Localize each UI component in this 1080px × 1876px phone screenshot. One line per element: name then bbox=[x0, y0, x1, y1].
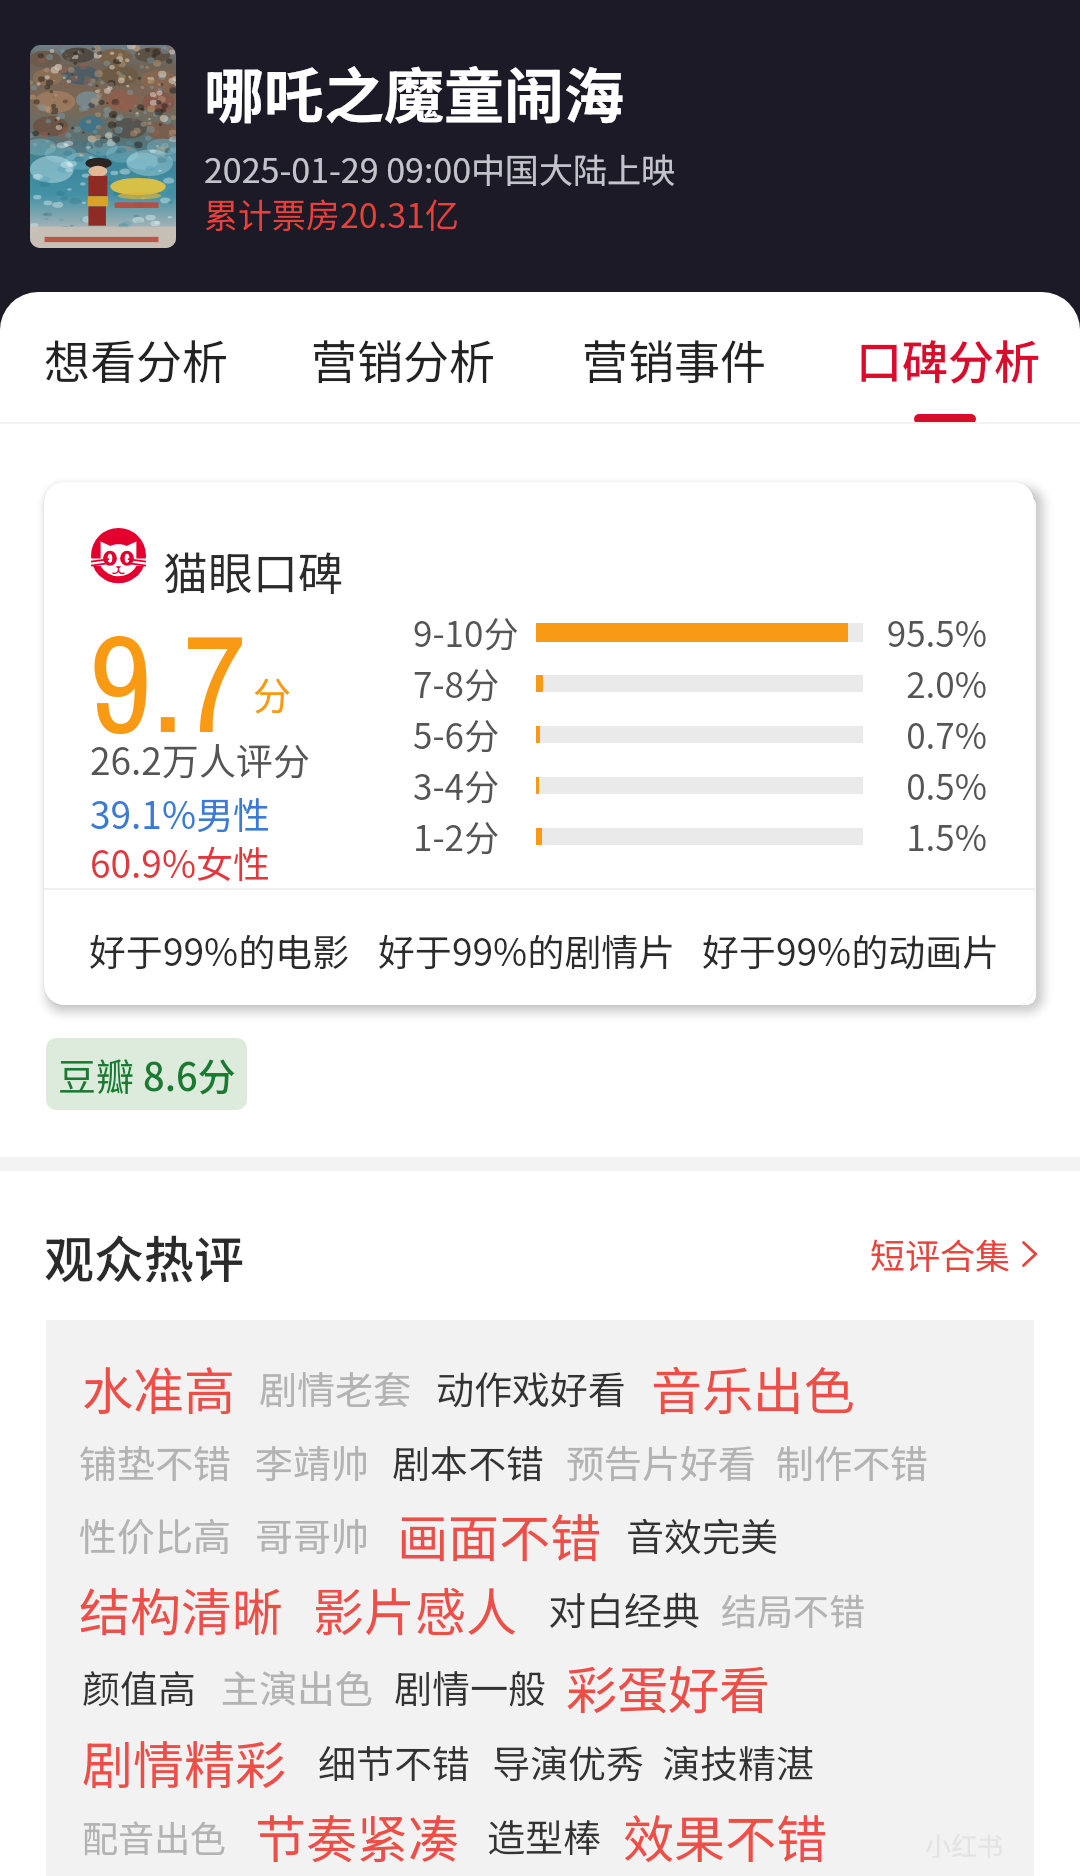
staticText: 0.7% bbox=[837, 708, 987, 759]
staticText: 营销分析 bbox=[311, 326, 495, 393]
button[interactable]: 猫眼口碑 9.7分 bbox=[44, 482, 1034, 1005]
staticText: 39.1%男性 bbox=[90, 786, 270, 840]
button[interactable]: 预告片好看 bbox=[566, 1434, 757, 1489]
staticText: 演技精湛 bbox=[662, 1734, 815, 1789]
staticText: 音效完美 bbox=[626, 1507, 779, 1562]
staticText: 结构清晰 bbox=[79, 1572, 284, 1646]
button[interactable]: 哥哥帅 bbox=[255, 1507, 370, 1562]
button[interactable]: 豆瓣 bbox=[46, 1038, 247, 1110]
staticText: 0.5% bbox=[837, 759, 987, 810]
staticText: 7-8分 bbox=[413, 657, 499, 708]
staticText: 哥哥帅 bbox=[255, 1507, 370, 1562]
staticText: 累计票房20.31亿 bbox=[204, 189, 459, 238]
button[interactable]: 剧情老套 bbox=[259, 1360, 412, 1415]
staticText: 剧本不错 bbox=[392, 1434, 545, 1489]
staticText: 效果不错 bbox=[623, 1799, 828, 1873]
staticText: 2.0% bbox=[837, 657, 987, 708]
staticText: 动作戏好看 bbox=[436, 1360, 627, 1415]
button[interactable]: 水准高 bbox=[82, 1351, 236, 1425]
staticText: 1-2分 bbox=[413, 810, 499, 861]
staticText: 9.7 bbox=[89, 589, 247, 775]
staticText: 画面不错 bbox=[397, 1498, 602, 1572]
button[interactable]: 主演出色 bbox=[221, 1659, 374, 1714]
staticText: 好于99%的电影 bbox=[89, 923, 350, 977]
staticText: 制作不错 bbox=[776, 1434, 929, 1489]
staticText: 60.9%女性 bbox=[90, 835, 270, 889]
other: 短评合集 More bbox=[1021, 1231, 1039, 1277]
button[interactable]: 对白经典 bbox=[548, 1581, 701, 1636]
staticText: 配音出色 bbox=[82, 1810, 227, 1862]
button[interactable]: 性价比高 bbox=[79, 1507, 232, 1562]
staticText: 影片感人 bbox=[313, 1572, 518, 1646]
staticText: 猫眼口碑 bbox=[163, 538, 344, 603]
staticText: 李靖帅 bbox=[255, 1434, 370, 1489]
staticText: 营销事件 bbox=[582, 326, 766, 393]
button[interactable]: 颜值高 bbox=[82, 1659, 197, 1714]
staticText: 5-6分 bbox=[413, 708, 499, 759]
staticText: 颜值高 bbox=[82, 1659, 197, 1714]
button[interactable]: 造型棒 bbox=[487, 1808, 602, 1863]
button[interactable]: 铺垫不错 bbox=[79, 1434, 232, 1489]
staticText: 观众热评 bbox=[44, 1220, 244, 1292]
staticText: 细节不错 bbox=[318, 1734, 471, 1789]
staticText: 短评合集 bbox=[870, 1228, 1011, 1279]
staticText: 想看分析 bbox=[44, 326, 228, 393]
button[interactable]: 结构清晰 bbox=[79, 1572, 284, 1646]
staticText: 导演优秀 bbox=[492, 1734, 645, 1789]
staticText: 1.5% bbox=[837, 810, 987, 861]
staticText: 26.2万人评分 bbox=[90, 732, 310, 786]
button[interactable]: 音效完美 bbox=[626, 1507, 779, 1562]
button[interactable]: 配音出色 bbox=[82, 1810, 227, 1862]
button[interactable]: 营销事件 bbox=[560, 292, 788, 422]
staticText: 哪吒之魔童闹海 bbox=[204, 48, 624, 135]
button[interactable]: 动作戏好看 bbox=[436, 1360, 627, 1415]
staticText: 音乐出色 bbox=[651, 1351, 856, 1425]
staticText: 主演出色 bbox=[221, 1659, 374, 1714]
staticText: 彩蛋好看 bbox=[566, 1650, 771, 1724]
button[interactable]: 细节不错 bbox=[318, 1734, 471, 1789]
button[interactable]: 演技精湛 bbox=[662, 1734, 815, 1789]
button[interactable]: 剧情精彩 bbox=[82, 1725, 287, 1799]
button[interactable]: 营销分析 bbox=[289, 292, 517, 422]
staticText: 造型棒 bbox=[487, 1808, 602, 1863]
button[interactable]: 剧本不错 bbox=[392, 1434, 545, 1489]
staticText: 剧情一般 bbox=[394, 1659, 547, 1714]
staticText: 预告片好看 bbox=[566, 1434, 757, 1489]
staticText: 2025-01-29 09:00中国大陆上映 bbox=[204, 144, 676, 193]
staticText: 9-10分 bbox=[413, 606, 519, 657]
button[interactable]: 效果不错 bbox=[623, 1799, 828, 1873]
staticText: 剧情精彩 bbox=[82, 1725, 287, 1799]
staticText: 结局不错 bbox=[721, 1583, 866, 1635]
button[interactable]: 制作不错 bbox=[776, 1434, 929, 1489]
staticText: 口碑分析 bbox=[856, 326, 1040, 393]
staticText: 分 bbox=[253, 666, 292, 721]
staticText: 节奏紧凑 bbox=[255, 1799, 460, 1873]
button[interactable]: 节奏紧凑 bbox=[255, 1799, 460, 1873]
staticText: 对白经典 bbox=[548, 1581, 701, 1636]
button[interactable]: 画面不错 bbox=[397, 1498, 602, 1572]
staticText: 水准高 bbox=[82, 1351, 236, 1425]
staticText: 好于99%的动画片 bbox=[702, 923, 1000, 977]
button[interactable]: 彩蛋好看 bbox=[566, 1650, 771, 1724]
staticText: 小红书 bbox=[925, 1826, 1004, 1864]
staticText: 铺垫不错 bbox=[79, 1434, 232, 1489]
button[interactable]: 音乐出色 bbox=[651, 1351, 856, 1425]
staticText: 性价比高 bbox=[79, 1507, 232, 1562]
button[interactable]: 想看分析 bbox=[22, 292, 250, 422]
button[interactable]: 李靖帅 bbox=[255, 1434, 370, 1489]
staticText: 8.6分 bbox=[143, 1047, 236, 1102]
staticText: 好于99%的剧情片 bbox=[378, 923, 676, 977]
button[interactable]: 剧情一般 bbox=[394, 1659, 547, 1714]
staticText: 95.5% bbox=[837, 606, 987, 657]
staticText: 剧情老套 bbox=[259, 1360, 412, 1415]
button[interactable]: 导演优秀 bbox=[492, 1734, 645, 1789]
button[interactable]: 短评合集 bbox=[860, 1218, 1040, 1290]
staticText: 豆瓣 bbox=[58, 1047, 143, 1102]
button[interactable]: 结局不错 bbox=[721, 1583, 866, 1635]
button[interactable]: 口碑分析 bbox=[834, 292, 1062, 422]
staticText: 3-4分 bbox=[413, 759, 499, 810]
button[interactable]: 影片感人 bbox=[313, 1572, 518, 1646]
